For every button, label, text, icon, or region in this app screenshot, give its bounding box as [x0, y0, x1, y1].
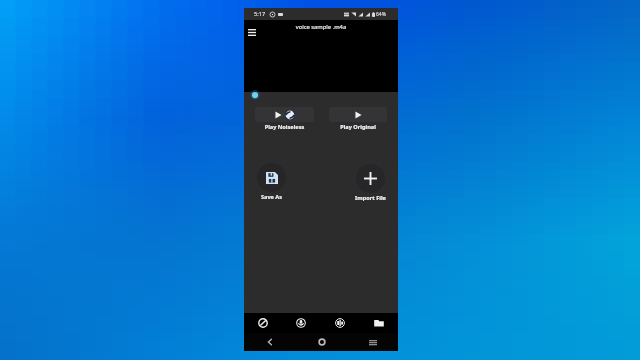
button[interactable]: Home — [296, 333, 347, 351]
button[interactable]: Back — [244, 333, 296, 351]
button[interactable] — [257, 163, 286, 192]
staticText: Import File — [342, 194, 399, 202]
staticText: voice sample .m4a — [244, 23, 398, 31]
button[interactable]: Effects — [320, 313, 359, 333]
staticText: 5:17 — [254, 10, 266, 18]
button[interactable]: Noise reduction — [244, 313, 282, 333]
button[interactable]: Recents — [347, 333, 398, 351]
staticText: Play Noiseless — [255, 123, 314, 131]
button[interactable]: Menu — [244, 25, 259, 39]
button[interactable]: Record — [282, 313, 320, 333]
staticText: Play Original — [329, 123, 387, 131]
button[interactable] — [255, 107, 314, 122]
button[interactable]: Files — [359, 313, 398, 333]
staticText: Save As — [243, 193, 300, 201]
button[interactable] — [356, 164, 385, 193]
button[interactable] — [329, 107, 387, 122]
staticText: 64% — [376, 11, 386, 18]
